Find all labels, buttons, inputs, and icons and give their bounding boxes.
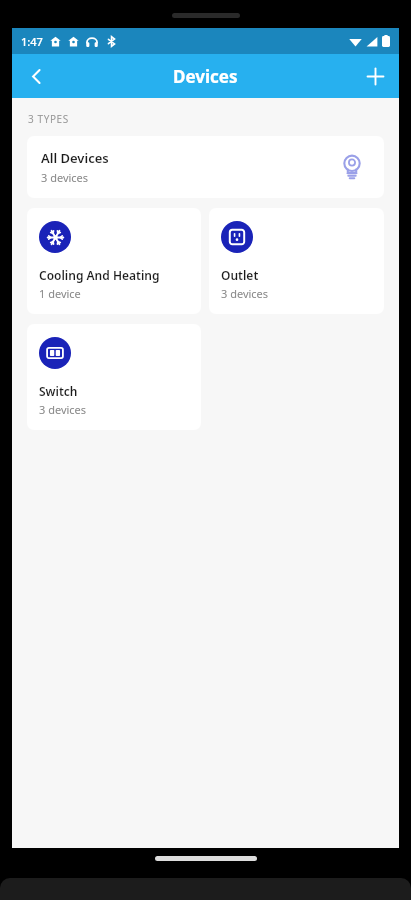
staticText: 3 devices bbox=[41, 170, 89, 185]
staticText: 3 devices bbox=[39, 402, 87, 417]
staticText: 1:47 bbox=[21, 34, 43, 49]
staticText: 1 device bbox=[39, 286, 81, 301]
staticText: 3 TYPES bbox=[28, 112, 69, 126]
button[interactable]: Cooling And Heating bbox=[27, 208, 201, 314]
button[interactable]: Outlet bbox=[209, 208, 384, 314]
staticText: Switch bbox=[39, 383, 78, 399]
staticText: 3 devices bbox=[221, 286, 269, 301]
staticText: Cooling And Heating bbox=[39, 267, 160, 283]
staticText: Outlet bbox=[221, 267, 259, 283]
button[interactable]: Switch bbox=[27, 324, 201, 430]
button[interactable]: Back bbox=[12, 54, 60, 98]
staticText: Devices bbox=[173, 65, 238, 88]
button[interactable]: All Devices bbox=[27, 136, 384, 198]
staticText: All Devices bbox=[41, 149, 109, 167]
button[interactable]: Add device bbox=[351, 54, 399, 98]
